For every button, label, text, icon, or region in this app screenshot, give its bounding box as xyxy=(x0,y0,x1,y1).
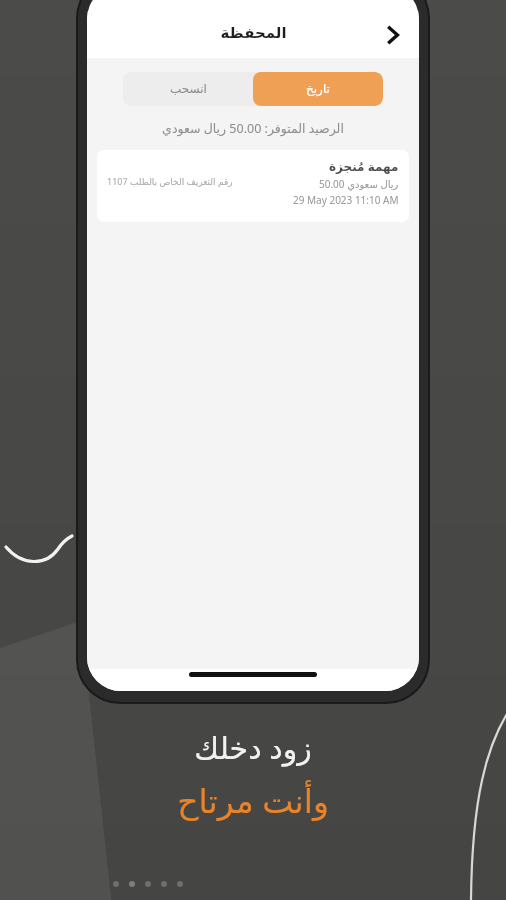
staticText: تاريخ xyxy=(306,82,330,96)
staticText: مهمة مُنجزة xyxy=(329,158,399,174)
staticText: 29 May 2023 11:10 AM xyxy=(293,193,399,207)
button[interactable] xyxy=(129,881,135,887)
button[interactable] xyxy=(145,881,151,887)
button[interactable]: انسحب xyxy=(123,72,253,106)
button[interactable] xyxy=(113,881,119,887)
staticText: المحفظة xyxy=(220,24,287,41)
button[interactable] xyxy=(177,881,183,887)
staticText: 50.00 ريال سعودي xyxy=(319,177,399,191)
button[interactable]: مهمة مُنجزة xyxy=(97,150,409,222)
button[interactable]: Next xyxy=(373,15,413,55)
staticText: وأنت مرتاح xyxy=(177,778,329,823)
staticText: الرصيد المتوفر: 50.00 ريال سعودي xyxy=(87,120,419,137)
button[interactable]: تاريخ xyxy=(253,72,383,106)
button[interactable] xyxy=(161,881,167,887)
staticText: انسحب xyxy=(170,82,207,96)
staticText: زود دخلك xyxy=(194,727,312,768)
staticText: رقم التعريف الخاص بالطلب 1107 xyxy=(107,175,233,187)
